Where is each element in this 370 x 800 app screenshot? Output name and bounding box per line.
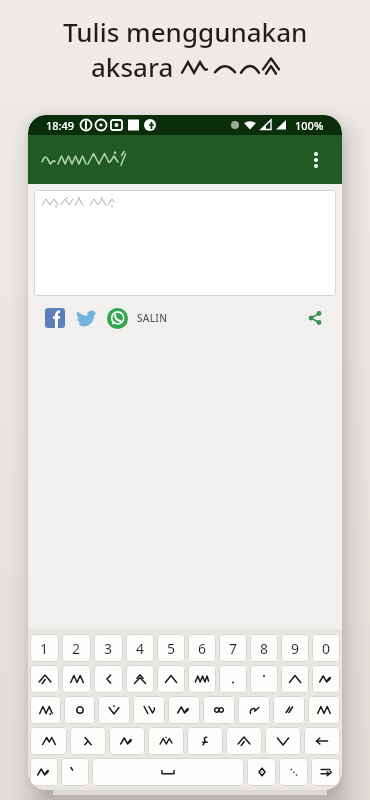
button[interactable]: 1 [30, 634, 59, 662]
button[interactable] [311, 758, 340, 786]
button[interactable] [107, 308, 128, 329]
button[interactable] [64, 696, 95, 724]
button[interactable] [304, 727, 340, 755]
button[interactable] [168, 696, 200, 724]
button[interactable]: SALIN [137, 311, 168, 325]
button[interactable] [265, 727, 301, 755]
button[interactable]: 9 [281, 634, 309, 662]
button[interactable] [187, 727, 223, 755]
button[interactable] [247, 758, 276, 786]
staticText: 0 [322, 639, 331, 658]
staticText: aksara [91, 49, 181, 84]
staticText: 5 [167, 639, 176, 658]
button[interactable] [250, 665, 278, 693]
button[interactable]: 5 [157, 634, 185, 662]
staticText: 6 [198, 639, 207, 658]
button[interactable]: 0 [312, 634, 340, 662]
button[interactable] [148, 727, 184, 755]
button[interactable] [157, 665, 185, 693]
button[interactable] [238, 696, 270, 724]
button[interactable] [94, 665, 123, 693]
staticText: Tulis menggunakan [63, 14, 308, 49]
staticText: 9 [291, 639, 300, 658]
button[interactable]: 3 [94, 634, 123, 662]
staticText: 2 [72, 639, 81, 658]
staticText: 4 [136, 639, 145, 658]
staticText: 7 [229, 639, 238, 658]
button[interactable] [30, 727, 67, 755]
button[interactable]: 2 [62, 634, 91, 662]
staticText: 3 [104, 639, 113, 658]
button[interactable] [30, 665, 59, 693]
button[interactable] [304, 148, 328, 172]
button[interactable] [203, 696, 235, 724]
button[interactable] [226, 727, 262, 755]
button[interactable] [312, 665, 340, 693]
button[interactable] [30, 758, 58, 786]
button[interactable] [45, 308, 65, 328]
button[interactable]: 6 [188, 634, 216, 662]
staticText: 100% [295, 118, 324, 133]
button[interactable]: 4 [126, 634, 154, 662]
button[interactable] [109, 727, 145, 755]
button[interactable] [305, 308, 325, 328]
staticText: 1 [40, 639, 49, 658]
button[interactable] [188, 665, 216, 693]
button[interactable] [70, 727, 106, 755]
button[interactable] [281, 665, 309, 693]
button[interactable] [74, 307, 96, 329]
button[interactable] [133, 696, 165, 724]
staticText: 18:49 [46, 118, 75, 133]
button[interactable] [62, 665, 91, 693]
button[interactable] [279, 758, 308, 786]
button[interactable]: 7 [219, 634, 247, 662]
button[interactable] [61, 758, 89, 786]
button[interactable] [30, 696, 61, 724]
button[interactable] [126, 665, 154, 693]
button[interactable] [92, 758, 244, 786]
button[interactable] [219, 665, 247, 693]
button[interactable]: 8 [250, 634, 278, 662]
button[interactable] [98, 696, 130, 724]
button[interactable] [34, 190, 336, 296]
staticText: SALIN [137, 311, 168, 325]
button[interactable] [308, 696, 340, 724]
staticText: 8 [260, 639, 269, 658]
button[interactable] [273, 696, 305, 724]
